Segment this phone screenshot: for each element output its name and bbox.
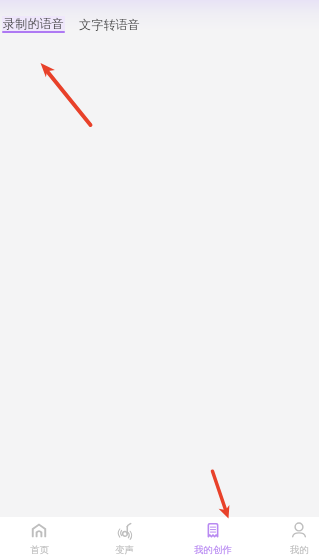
staticText: 文字转语音 xyxy=(79,17,140,32)
button[interactable]: 文字转语音 xyxy=(79,16,140,32)
staticText: 我的创作 xyxy=(194,544,232,556)
button[interactable]: 首页 xyxy=(9,517,69,560)
staticText: 我的 xyxy=(290,544,309,556)
button[interactable]: 变声 xyxy=(94,517,154,560)
staticText: 首页 xyxy=(30,544,49,556)
staticText: 变声 xyxy=(115,544,134,556)
button[interactable]: 录制的语音 xyxy=(2,16,65,33)
button[interactable]: 我的 xyxy=(269,517,319,560)
button[interactable]: 我的创作 xyxy=(183,517,243,560)
staticText: 录制的语音 xyxy=(3,16,64,31)
